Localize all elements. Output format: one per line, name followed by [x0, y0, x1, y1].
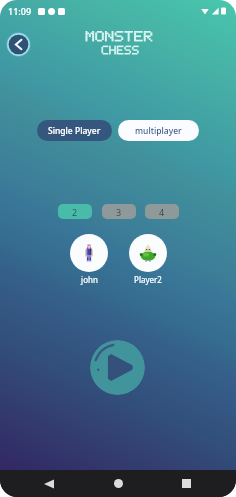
staticText: Player2: [134, 274, 162, 285]
button[interactable]: Back: [6, 32, 31, 57]
staticText: Single Player: [48, 125, 101, 137]
button[interactable]: Play: [90, 340, 145, 395]
button[interactable]: [129, 234, 167, 272]
button[interactable]: Single Player: [37, 120, 112, 141]
button[interactable]: multiplayer: [118, 120, 199, 141]
button[interactable]: [70, 234, 108, 272]
staticText: 4: [159, 206, 165, 218]
button[interactable]: Back: [36, 470, 62, 497]
staticText: 3: [116, 206, 122, 218]
staticText: multiplayer: [135, 125, 182, 137]
staticText: john: [81, 274, 98, 285]
button[interactable]: 2: [58, 204, 92, 219]
staticText: 2: [72, 206, 78, 218]
button[interactable]: 4: [145, 204, 179, 219]
button[interactable]: Recent apps: [173, 470, 199, 497]
staticText: 11:09: [8, 5, 32, 17]
button[interactable]: Home: [105, 470, 131, 497]
button[interactable]: 3: [102, 204, 136, 219]
